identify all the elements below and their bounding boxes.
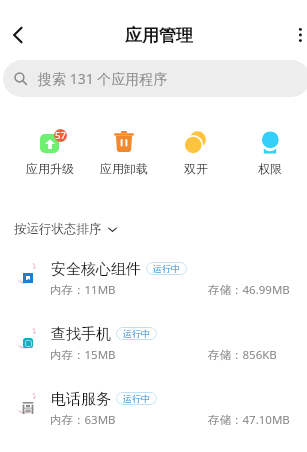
staticText: 电话服务 bbox=[51, 390, 111, 409]
staticText: 查找手机 bbox=[51, 325, 111, 344]
button[interactable]: Back bbox=[2, 19, 34, 51]
staticText: 安全核心组件 bbox=[51, 260, 141, 279]
staticText: 内存：15MB bbox=[50, 347, 116, 363]
button[interactable]: 搜索 131 个应用程序 bbox=[3, 60, 307, 97]
button[interactable]: 双开 bbox=[162, 126, 230, 176]
button[interactable]: 安全核心组件 bbox=[0, 247, 307, 312]
staticText: 运行中 bbox=[123, 328, 150, 339]
button[interactable]: 按运行状态排序 bbox=[14, 221, 117, 237]
staticText: 内存：11MB bbox=[50, 282, 116, 298]
button[interactable]: 权限 bbox=[236, 126, 304, 176]
staticText: 搜索 131 个应用程序 bbox=[38, 69, 168, 88]
staticText: 应用管理 bbox=[125, 25, 193, 46]
staticText: 存储：856KB bbox=[208, 347, 277, 363]
staticText: 双开 bbox=[184, 161, 208, 176]
staticText: 内存：63MB bbox=[50, 412, 116, 428]
staticText: 应用卸载 bbox=[100, 161, 148, 176]
button[interactable]: 查找手机 bbox=[0, 312, 307, 377]
staticText: 按运行状态排序 bbox=[14, 221, 102, 237]
staticText: 存储：46.99MB bbox=[208, 282, 290, 298]
button[interactable]: 57 bbox=[16, 126, 84, 176]
button[interactable]: 电话服务 bbox=[0, 377, 307, 442]
staticText: 应用升级 bbox=[26, 161, 74, 176]
button[interactable]: More options bbox=[286, 21, 307, 49]
staticText: 存储：47.10MB bbox=[208, 412, 290, 428]
staticText: 运行中 bbox=[123, 393, 150, 404]
staticText: 57 bbox=[55, 129, 66, 142]
staticText: 运行中 bbox=[153, 263, 180, 274]
staticText: 权限 bbox=[258, 161, 282, 176]
button[interactable]: 应用卸载 bbox=[90, 126, 158, 176]
